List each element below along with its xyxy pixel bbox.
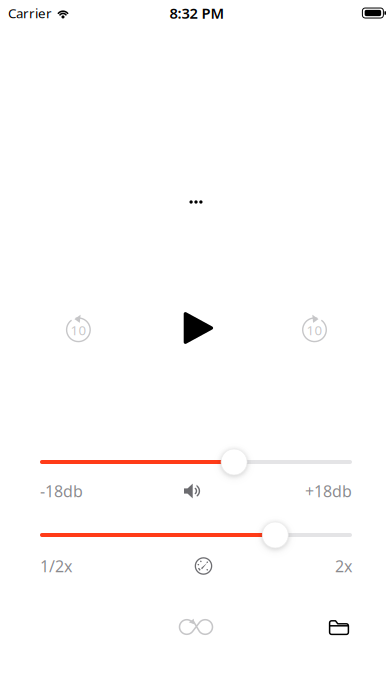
staticText: 1/2x — [40, 555, 72, 577]
button[interactable]: Skip forward 10 seconds — [278, 306, 352, 350]
staticText: 8:32 PM — [169, 3, 224, 23]
staticText: 10 — [70, 321, 86, 339]
button[interactable]: Repeat — [169, 605, 223, 649]
staticText: 2x — [335, 555, 352, 577]
staticText: Carrier — [8, 4, 52, 22]
button[interactable]: Play — [159, 306, 233, 350]
button[interactable]: Skip back 10 seconds — [40, 306, 114, 350]
staticText: +18db — [305, 480, 352, 502]
staticText: -18db — [40, 480, 83, 502]
button[interactable]: Files — [317, 605, 361, 649]
staticText: 10 — [306, 321, 322, 339]
